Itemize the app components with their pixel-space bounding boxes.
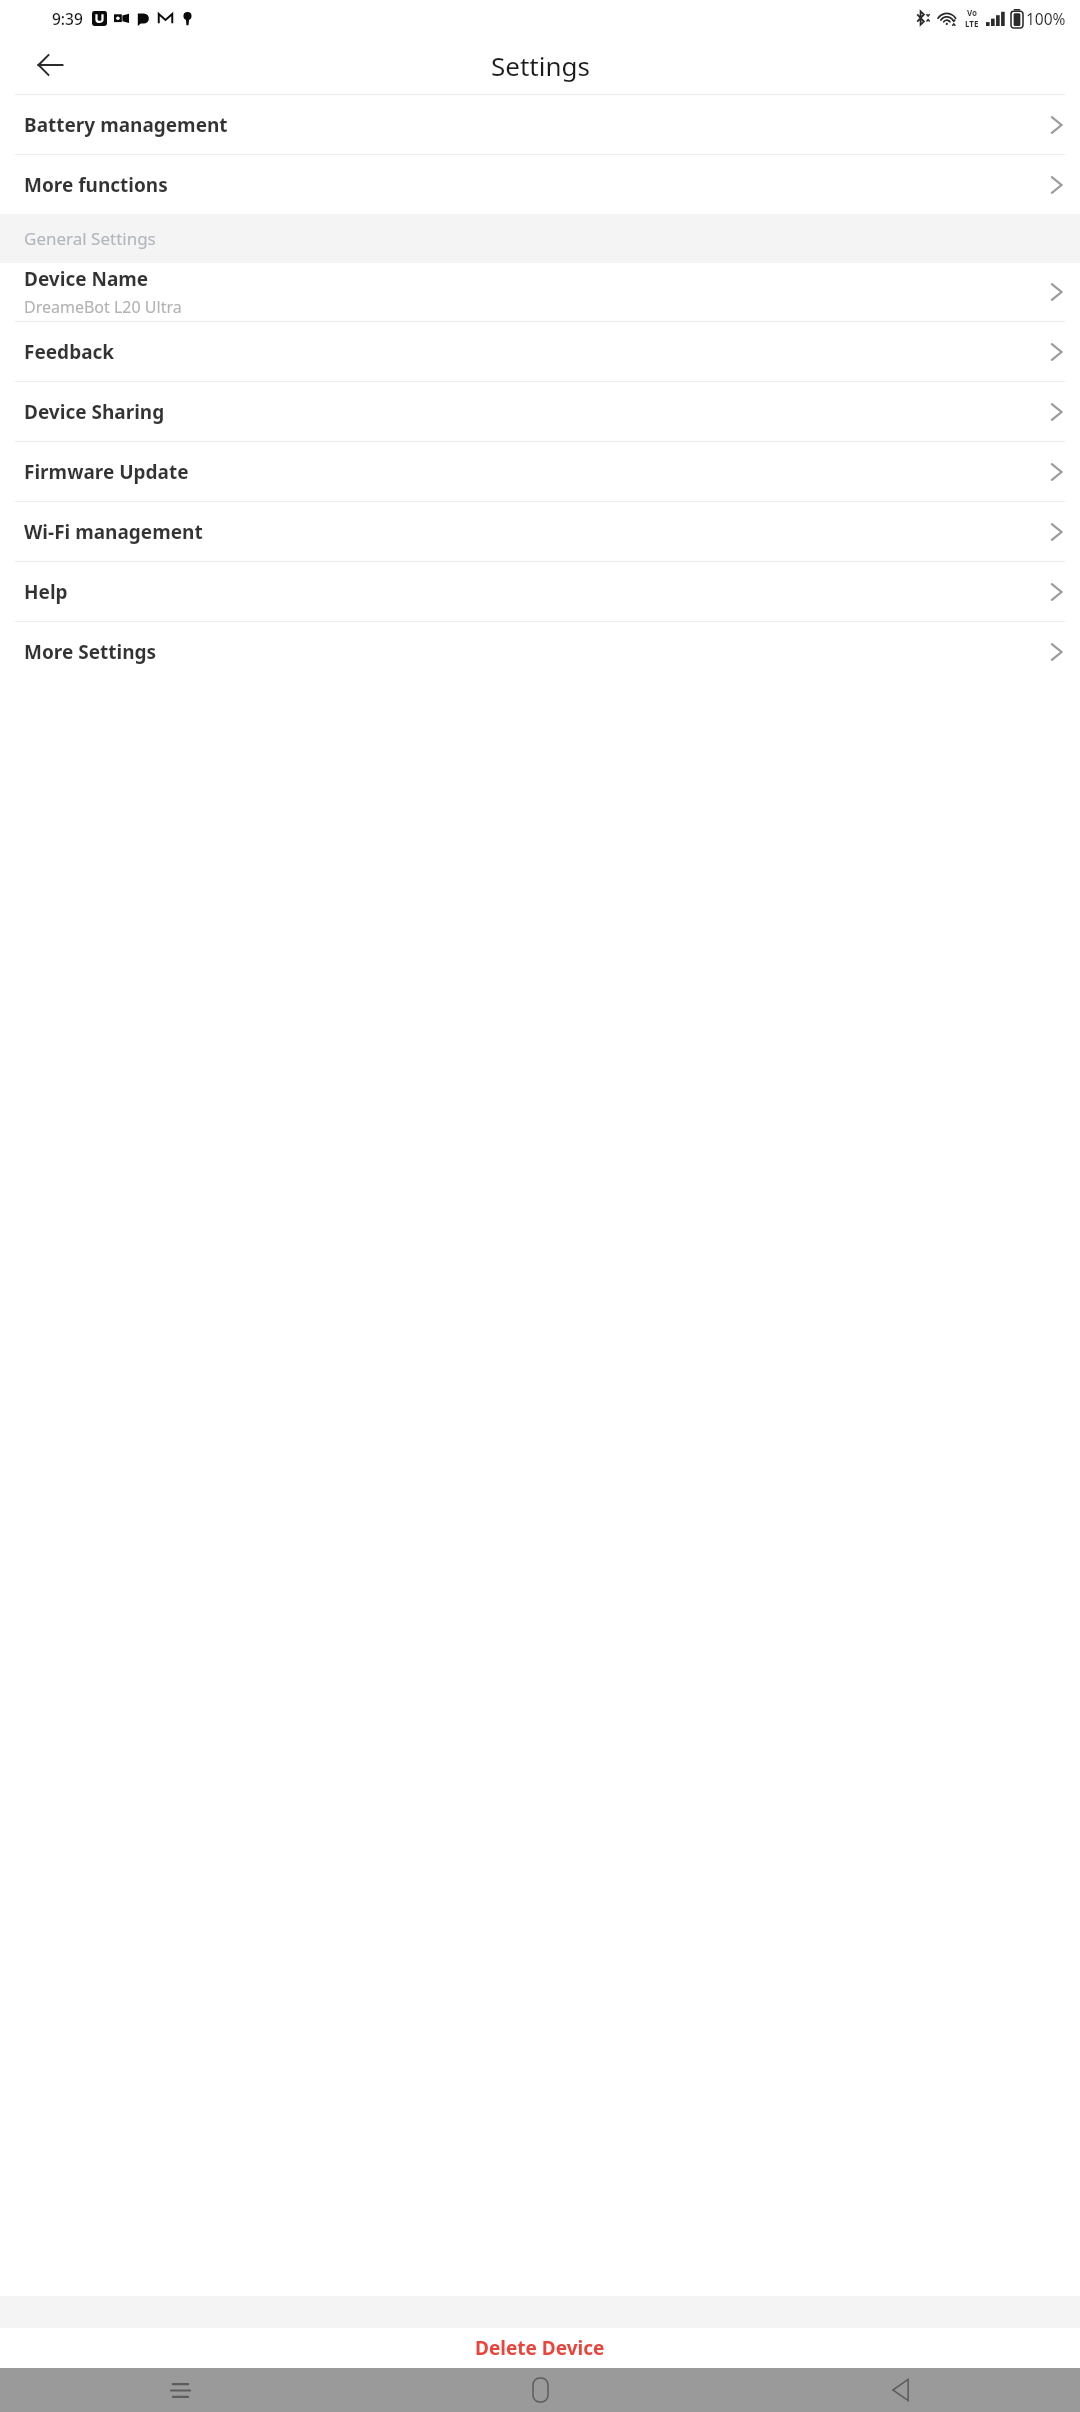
button[interactable]: Device Name — [0, 263, 1080, 321]
staticText: Vo — [967, 7, 978, 18]
button[interactable]: Help — [0, 562, 1080, 621]
staticText: Battery management — [24, 112, 1049, 138]
staticText: Firmware Update — [24, 459, 1049, 485]
staticText: More Settings — [24, 639, 1049, 665]
staticText: Feedback — [24, 339, 1049, 365]
button[interactable]: Feedback — [0, 322, 1080, 381]
staticText: 100% — [1026, 8, 1066, 29]
staticText: Device Name — [24, 266, 149, 292]
staticText: DreameBot L20 Ultra — [24, 296, 182, 318]
button[interactable]: Back — [30, 45, 70, 85]
button[interactable]: Recents — [0, 2368, 360, 2412]
staticText: 9:39 — [52, 8, 83, 29]
button[interactable]: More Settings — [0, 622, 1080, 681]
staticText: General Settings — [24, 227, 156, 250]
staticText: LTE — [965, 18, 979, 29]
button[interactable]: Firmware Update — [0, 442, 1080, 501]
staticText: Device Sharing — [24, 399, 1049, 425]
button[interactable]: Wi-Fi management — [0, 502, 1080, 561]
button[interactable]: More functions — [0, 155, 1080, 214]
staticText: More functions — [24, 172, 1049, 198]
staticText: Settings — [491, 48, 590, 83]
staticText: Delete Device — [475, 2335, 605, 2361]
button[interactable]: Back — [720, 2368, 1080, 2412]
button[interactable]: Battery management — [0, 95, 1080, 154]
button[interactable]: Delete Device — [0, 2328, 1080, 2368]
button[interactable]: Device Sharing — [0, 382, 1080, 441]
staticText: Help — [24, 579, 1049, 605]
staticText: Wi-Fi management — [24, 519, 1049, 545]
button[interactable]: Home — [360, 2368, 720, 2412]
